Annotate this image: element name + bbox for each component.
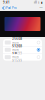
button[interactable]: 1TB bbox=[3, 54, 42, 61]
staticText: 1TB bbox=[12, 52, 17, 55]
button[interactable]: iPad Pro bbox=[2, 6, 17, 10]
staticText: From $1599 bbox=[12, 55, 22, 62]
staticText: 9:41 bbox=[3, 1, 10, 4]
button[interactable]: More bbox=[39, 6, 42, 10]
staticText: ıll ᛒ ▮ bbox=[34, 1, 42, 4]
button[interactable]: 512GB bbox=[3, 46, 42, 53]
staticText: 256GB bbox=[12, 37, 22, 41]
staticText: From $999 bbox=[12, 41, 20, 48]
button[interactable]: 256GB bbox=[3, 39, 42, 46]
staticText: 512GB bbox=[12, 44, 22, 48]
staticText: ••• bbox=[39, 6, 42, 10]
staticText: iPad Pro bbox=[5, 6, 17, 10]
staticText: From $1199 bbox=[12, 48, 22, 55]
